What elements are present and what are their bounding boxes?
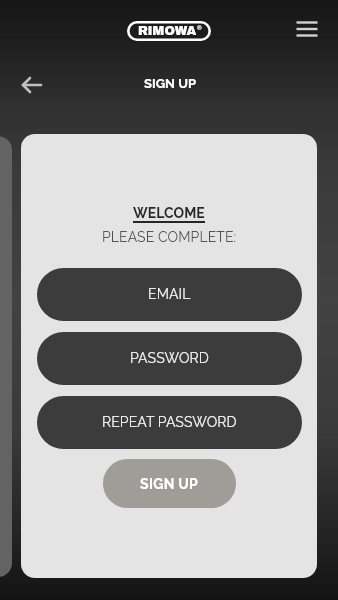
staticText: REPEAT PASSWORD <box>102 414 237 430</box>
button[interactable]: SIGN UP <box>103 459 236 508</box>
button[interactable]: EMAIL <box>37 268 302 321</box>
staticText: EMAIL <box>148 286 191 302</box>
staticText: PLEASE COMPLETE: <box>102 229 237 245</box>
button[interactable]: Back <box>19 72 45 98</box>
staticText: SIGN UP <box>140 476 199 492</box>
staticText: RIMOWA <box>138 24 197 38</box>
button[interactable]: RIMOWA home <box>127 21 211 41</box>
staticText: ® <box>197 25 202 32</box>
staticText: WELCOME <box>133 205 205 221</box>
staticText: SIGN UP <box>144 76 197 91</box>
button[interactable]: Menu <box>293 15 321 43</box>
button[interactable]: REPEAT PASSWORD <box>37 396 302 449</box>
staticText: PASSWORD <box>130 350 209 366</box>
button[interactable]: PASSWORD <box>37 332 302 385</box>
